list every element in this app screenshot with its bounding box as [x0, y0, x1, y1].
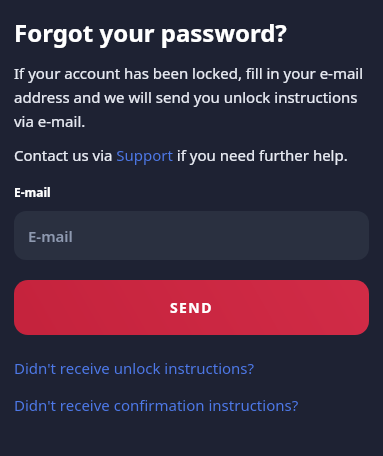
button[interactable]: Didn't receive confirmation instructions…: [14, 392, 369, 418]
button[interactable]: Didn't receive unlock instructions?: [14, 355, 369, 381]
staticText: Didn't receive unlock instructions?: [14, 358, 255, 378]
staticText: E-mail: [14, 184, 51, 200]
staticText: E-mail: [28, 226, 73, 246]
button[interactable]: E-mail: [14, 211, 369, 260]
staticText: SEND: [170, 298, 213, 317]
staticText: Didn't receive confirmation instructions…: [14, 395, 299, 415]
button[interactable]: SEND: [14, 280, 369, 335]
staticText: If your account has been locked, fill in…: [14, 63, 369, 131]
staticText: Contact us via Support if you need furth…: [14, 145, 348, 165]
staticText: Forgot your password?: [14, 16, 287, 49]
